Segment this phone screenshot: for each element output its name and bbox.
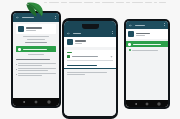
button[interactable] xyxy=(126,29,168,39)
button[interactable]: Home xyxy=(145,102,149,106)
button[interactable]: More options xyxy=(53,16,57,20)
button[interactable] xyxy=(64,63,116,68)
button[interactable]: Back xyxy=(134,102,138,106)
button[interactable]: Back xyxy=(15,15,20,20)
button[interactable]: More options xyxy=(110,31,114,35)
button[interactable]: Recent apps xyxy=(157,102,161,106)
button[interactable] xyxy=(64,37,116,47)
button[interactable] xyxy=(126,41,168,47)
button[interactable]: Back xyxy=(22,100,26,104)
button[interactable]: Back xyxy=(128,23,133,28)
button[interactable] xyxy=(16,24,56,34)
button[interactable] xyxy=(16,46,56,52)
button[interactable]: Recent apps xyxy=(47,100,51,104)
button[interactable]: Back xyxy=(66,31,71,36)
button[interactable] xyxy=(67,55,113,58)
button[interactable]: Home xyxy=(34,100,38,104)
button[interactable]: More options xyxy=(162,23,166,27)
